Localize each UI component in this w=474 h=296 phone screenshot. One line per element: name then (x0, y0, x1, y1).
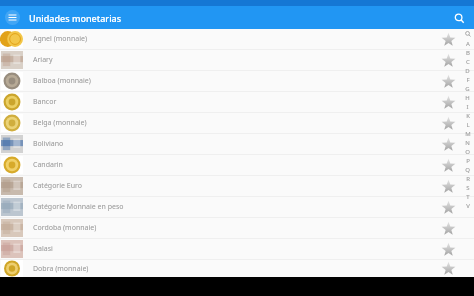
button[interactable]: Agnel (monnaie) (0, 29, 474, 49)
staticText: B (466, 49, 470, 57)
button[interactable]: Toggle favourite (436, 71, 460, 91)
staticText: M (465, 130, 471, 138)
staticText: T (466, 193, 470, 201)
staticText: D (465, 67, 470, 75)
staticText: A (466, 40, 470, 48)
staticText: S (466, 184, 470, 192)
button[interactable]: Open navigation menu (5, 10, 20, 25)
staticText: N (465, 139, 470, 147)
staticText: F (466, 76, 470, 84)
staticText: Cordoba (monnaie) (33, 223, 97, 233)
staticText: Catégorie Euro (33, 181, 83, 191)
button[interactable]: Search (450, 9, 468, 27)
button[interactable]: Toggle favourite (436, 176, 460, 196)
staticText: Candarin (33, 160, 63, 170)
button[interactable]: Belga (monnaie) (0, 113, 474, 133)
button[interactable]: Toggle favourite (436, 92, 460, 112)
button[interactable]: Toggle favourite (436, 29, 460, 49)
button[interactable]: Dalasi (0, 239, 474, 259)
staticText: C (466, 58, 470, 66)
button[interactable]: Toggle favourite (436, 134, 460, 154)
button[interactable]: Toggle favourite (436, 155, 460, 175)
staticText: Dalasi (33, 244, 53, 254)
button[interactable]: Toggle favourite (436, 239, 460, 259)
button[interactable]: Catégorie Euro (0, 176, 474, 196)
button[interactable]: Toggle favourite (436, 260, 460, 277)
staticText: P (466, 157, 470, 165)
staticText: Bancor (33, 97, 57, 107)
staticText: Belga (monnaie) (33, 118, 87, 128)
button[interactable]: Candarin (0, 155, 474, 175)
button[interactable]: Boliviano (0, 134, 474, 154)
staticText: G (465, 85, 470, 93)
staticText: Unidades monetarias (29, 12, 122, 24)
button[interactable]: Toggle favourite (436, 197, 460, 217)
button[interactable]: Toggle favourite (436, 50, 460, 70)
button[interactable]: Toggle favourite (436, 218, 460, 238)
staticText: I (466, 103, 469, 111)
staticText: H (465, 94, 470, 102)
staticText: Dobra (monnaie) (33, 264, 89, 274)
staticText: Q (465, 166, 470, 174)
staticText: L (466, 121, 470, 129)
staticText: V (466, 202, 470, 210)
button[interactable]: Alphabet index (461, 29, 474, 277)
staticText: Agnel (monnaie) (33, 34, 87, 44)
button[interactable]: Catégorie Monnaie en peso (0, 197, 474, 217)
staticText: O (465, 148, 470, 156)
staticText: R (466, 175, 470, 183)
button[interactable]: Cordoba (monnaie) (0, 218, 474, 238)
staticText: Ariary (33, 55, 53, 65)
staticText: Boliviano (33, 139, 64, 149)
button[interactable]: Ariary (0, 50, 474, 70)
button[interactable]: Toggle favourite (436, 113, 460, 133)
button[interactable]: Dobra (monnaie) (0, 260, 474, 277)
staticText: Balboa (monnaie) (33, 76, 91, 86)
button[interactable]: Bancor (0, 92, 474, 112)
button[interactable]: Balboa (monnaie) (0, 71, 474, 91)
staticText: Catégorie Monnaie en peso (33, 202, 124, 212)
staticText: K (466, 112, 470, 120)
